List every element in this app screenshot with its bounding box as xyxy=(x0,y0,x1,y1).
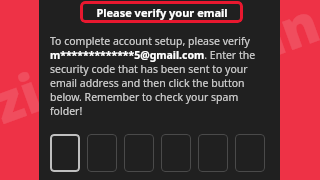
button[interactable]: Security code digit 6 xyxy=(235,134,265,172)
button[interactable]: Security code digit 1 xyxy=(50,134,80,172)
button[interactable]: Security code digit 4 xyxy=(161,134,191,172)
button[interactable]: Security code digit 2 xyxy=(87,134,117,172)
staticText: an xyxy=(237,0,320,78)
button[interactable]: Please verify your email xyxy=(80,1,243,23)
staticText: To complete account setup, please verify… xyxy=(50,34,272,118)
staticText: Please verify your email xyxy=(96,5,228,20)
button[interactable]: Security code digit 3 xyxy=(124,134,154,172)
button[interactable]: Security code digit 5 xyxy=(198,134,228,172)
staticText: zi xyxy=(0,54,50,139)
